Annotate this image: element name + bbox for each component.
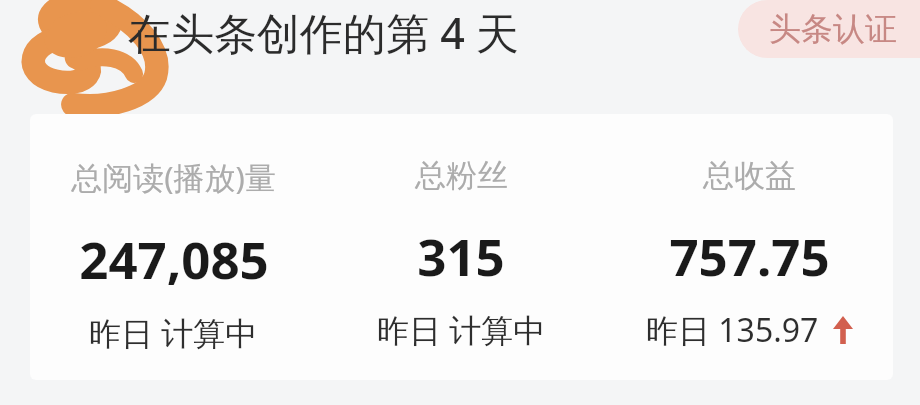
button[interactable]: 头条认证 xyxy=(738,0,920,58)
button[interactable]: 总阅读(播放)量 xyxy=(30,114,893,380)
button[interactable]: 总收益 xyxy=(605,114,893,352)
staticText: 757.75 xyxy=(669,221,830,290)
staticText: 247,085 xyxy=(79,224,269,293)
staticText: 在头条创作的第 4 天 xyxy=(128,3,519,62)
staticText: 总阅读(播放)量 xyxy=(71,156,276,198)
button[interactable]: 总阅读(播放)量 xyxy=(30,114,317,355)
staticText: 总粉丝 xyxy=(415,156,508,195)
staticText: 昨日 计算中 xyxy=(377,308,546,352)
staticText: 总收益 xyxy=(703,156,796,195)
staticText: 315 xyxy=(417,221,505,290)
staticText: 头条认证 xyxy=(769,9,897,49)
other: Logo xyxy=(8,0,188,114)
button[interactable]: 总粉丝 xyxy=(317,114,605,352)
other: Increase xyxy=(833,316,853,344)
staticText: 昨日 135.97 xyxy=(646,308,819,352)
staticText: 昨日 计算中 xyxy=(89,311,258,355)
